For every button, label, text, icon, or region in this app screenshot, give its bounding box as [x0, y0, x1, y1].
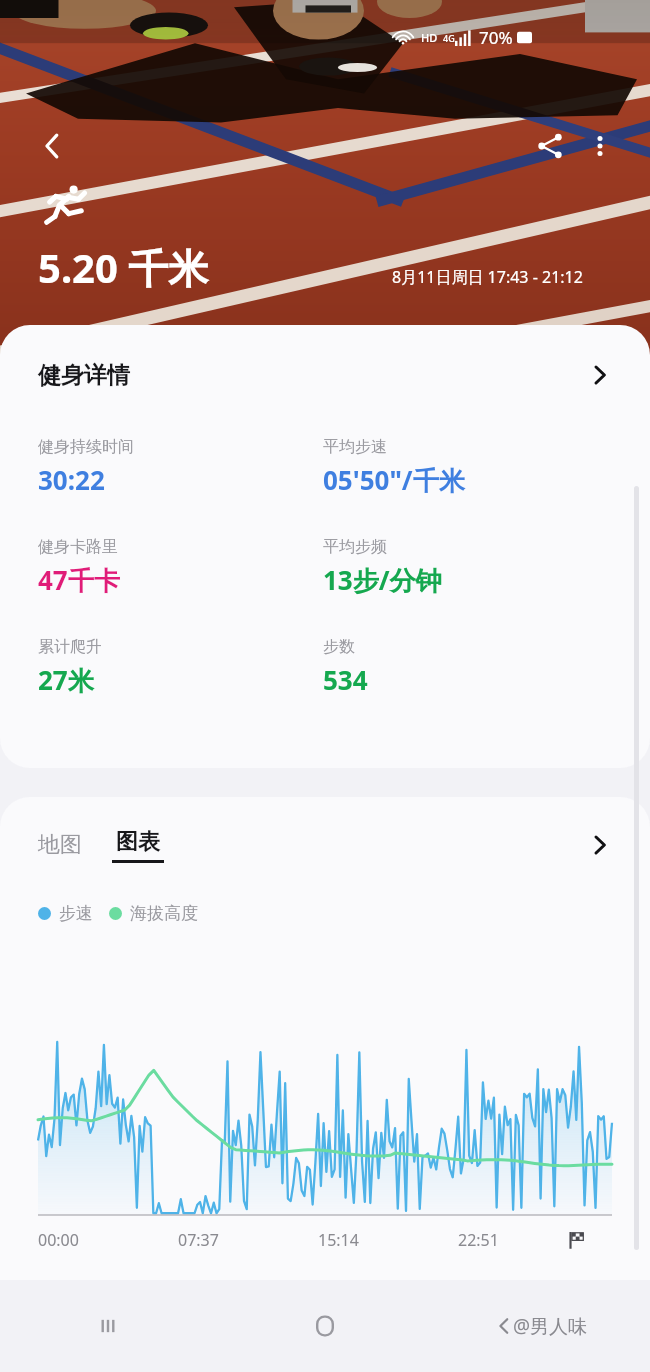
button[interactable]: More options: [572, 118, 628, 174]
staticText: 健身持续时间: [38, 437, 134, 457]
staticText: 健身卡路里: [38, 537, 118, 557]
staticText: 05'50"/千米: [323, 462, 465, 498]
button[interactable]: Recents: [0, 1280, 216, 1372]
button[interactable]: Back: [433, 1280, 650, 1372]
staticText: 图表: [116, 828, 160, 856]
staticText: 地图: [38, 831, 82, 859]
staticText: 步数: [323, 637, 355, 657]
button[interactable]: 地图: [32, 825, 88, 865]
staticText: 00:00: [38, 1229, 178, 1251]
button[interactable]: Open chart: [580, 825, 620, 865]
staticText: 平均步频: [323, 537, 387, 557]
button[interactable]: Share: [522, 118, 578, 174]
staticText: 15:14: [318, 1229, 458, 1251]
staticText: 步速: [59, 903, 93, 924]
button[interactable]: 图表: [106, 822, 170, 869]
staticText: 累计爬升: [38, 637, 102, 657]
staticText: 70%: [479, 26, 513, 49]
staticText: 13步/分钟: [323, 562, 442, 598]
staticText: 22:51: [458, 1229, 568, 1251]
button[interactable]: Home: [216, 1280, 433, 1372]
staticText: 5.20 千米: [38, 240, 209, 295]
staticText: 8月11日周日 17:43 - 21:12: [392, 266, 583, 288]
staticText: 07:37: [178, 1229, 318, 1251]
staticText: @男人味: [513, 1313, 588, 1339]
staticText: 海拔高度: [130, 903, 198, 924]
staticText: 健身详情: [38, 361, 130, 390]
staticText: 534: [323, 662, 368, 697]
staticText: HD: [421, 30, 438, 45]
staticText: 30:22: [38, 462, 105, 497]
staticText: 47千卡: [38, 562, 120, 598]
staticText: 4G: [443, 32, 455, 44]
staticText: 平均步速: [323, 437, 387, 457]
staticText: 27米: [38, 662, 94, 698]
button[interactable]: Back: [24, 118, 80, 174]
button[interactable]: 健身详情: [0, 325, 650, 425]
